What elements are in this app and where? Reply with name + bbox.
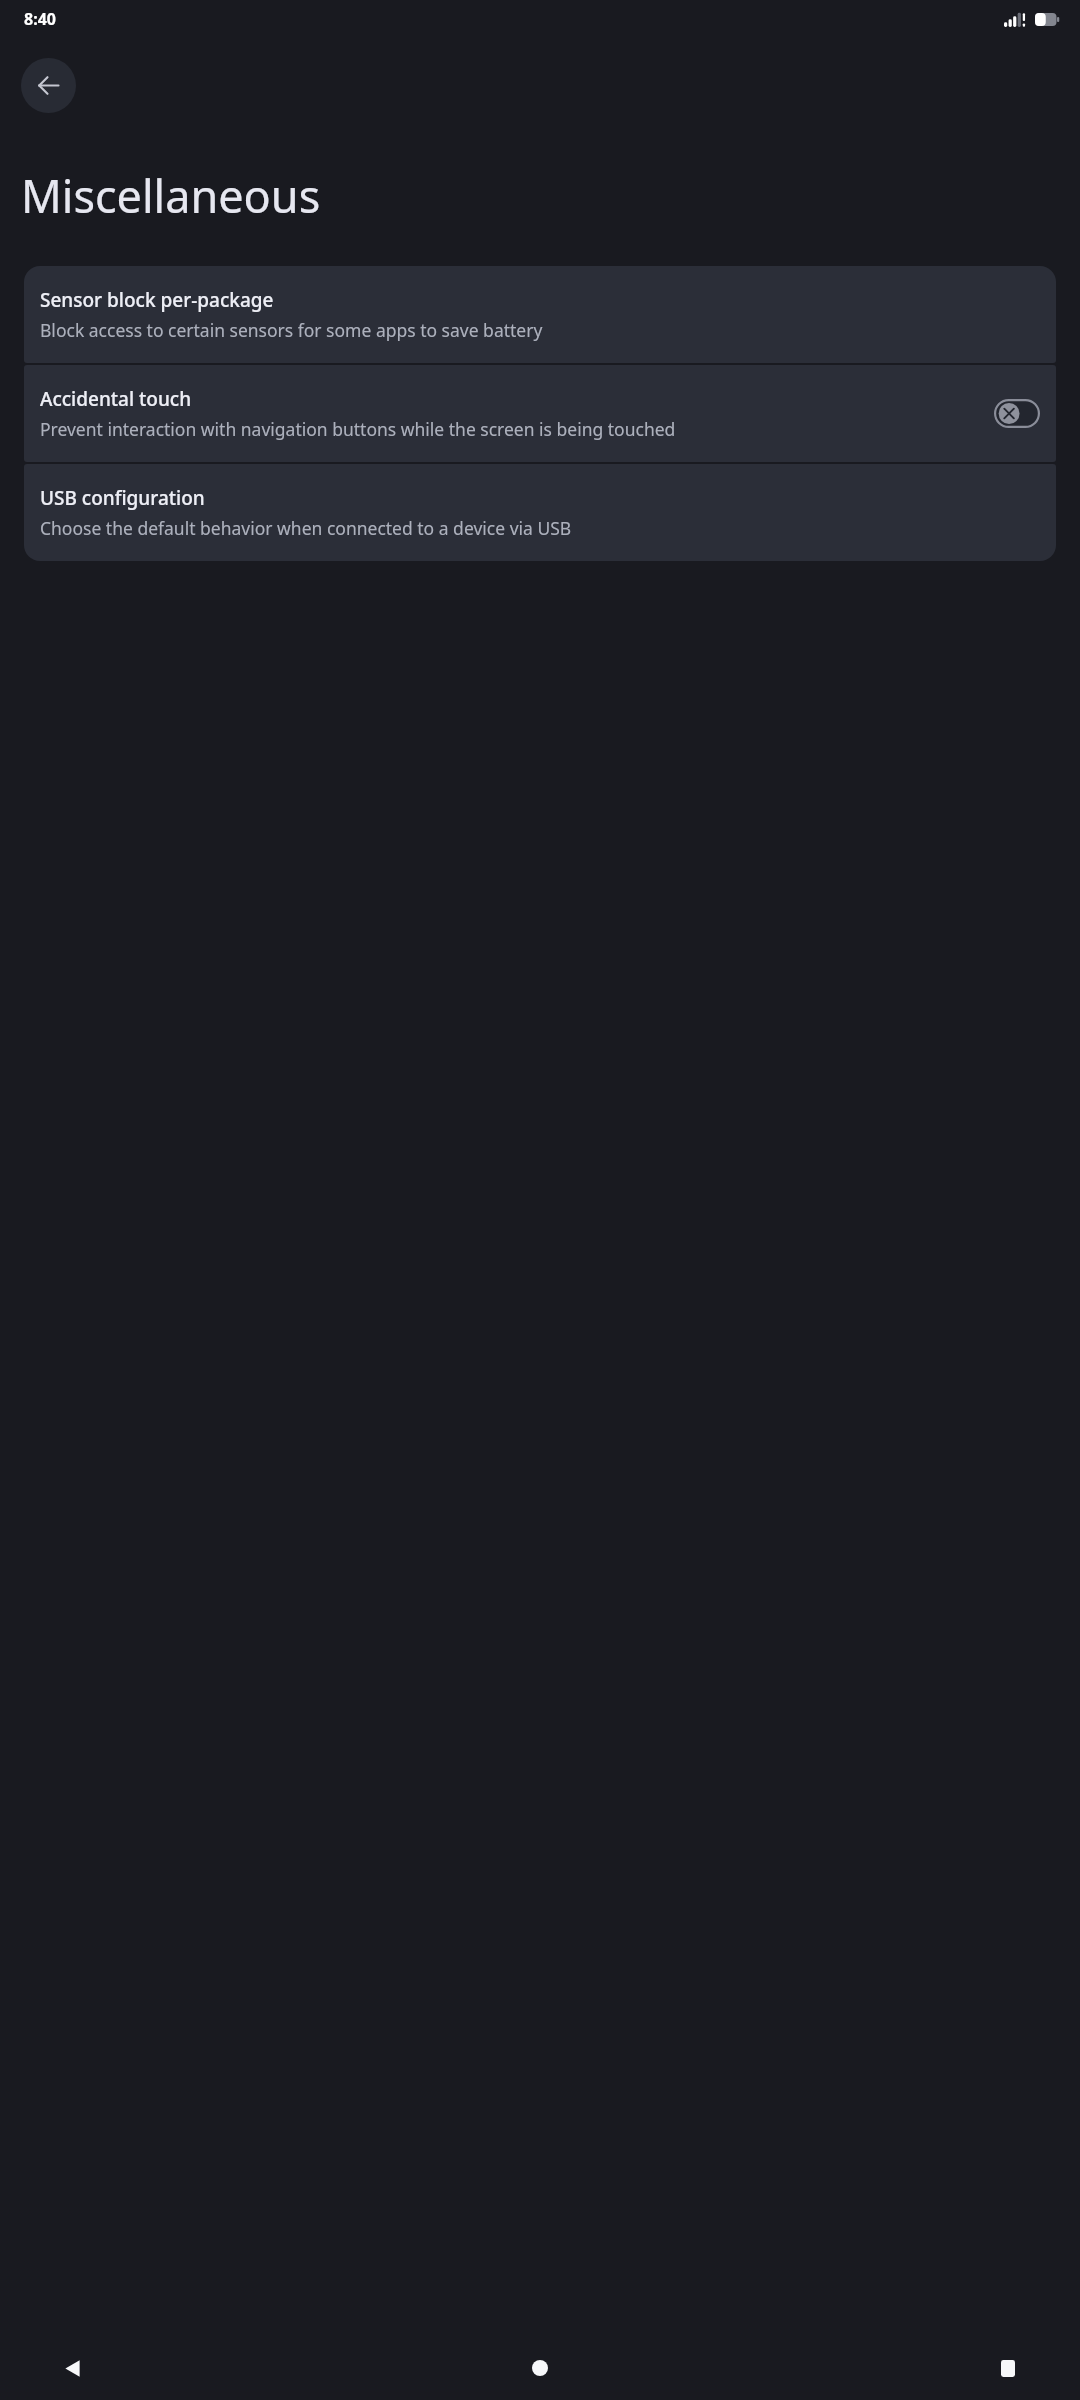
button[interactable]: Accidental touch [24, 365, 1056, 462]
button[interactable]: Home [512, 2340, 568, 2396]
button[interactable]: Back [44, 2340, 100, 2396]
button[interactable]: USB configuration [24, 464, 1056, 561]
button[interactable]: Sensor block per-package [24, 266, 1056, 363]
staticText: Block access to certain sensors for some… [40, 318, 1040, 342]
staticText: Prevent interaction with navigation butt… [40, 417, 778, 441]
staticText: USB configuration [40, 485, 205, 511]
button[interactable]: Back [21, 58, 76, 113]
staticText: Sensor block per-package [40, 287, 274, 313]
button[interactable]: Recent apps [980, 2340, 1036, 2396]
staticText: Accidental touch [40, 386, 192, 412]
staticText: Miscellaneous [21, 165, 321, 226]
staticText: Choose the default behavior when connect… [40, 516, 1040, 540]
staticText: 8:40 [24, 8, 56, 30]
button[interactable]: Accidental touch, off [994, 399, 1040, 428]
